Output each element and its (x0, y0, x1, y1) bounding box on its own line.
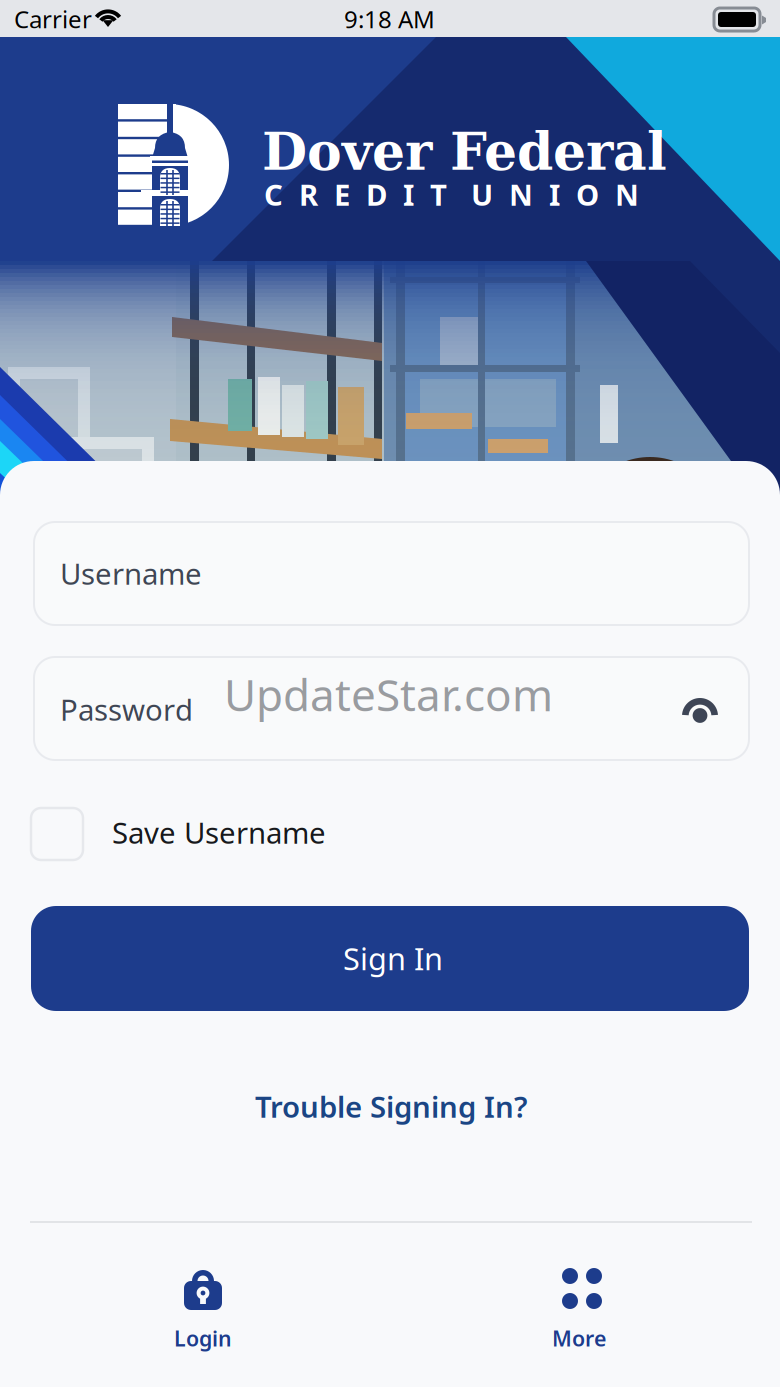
button[interactable]: More (448, 1248, 708, 1358)
button[interactable]: Password (34, 657, 749, 760)
button[interactable]: Username (34, 522, 749, 625)
button[interactable]: Login (72, 1248, 332, 1358)
staticText: Trouble Signing In? (255, 1087, 528, 1126)
button[interactable]: Sign In (31, 906, 749, 1011)
staticText: Carrier (14, 3, 92, 35)
staticText: Username (60, 554, 202, 593)
staticText: C R E D I T U N I O N (264, 175, 639, 214)
staticText: 9:18 AM (344, 3, 435, 35)
staticText: Password (60, 690, 193, 729)
staticText: Dover Federal (262, 121, 667, 182)
staticText: Sign In (343, 938, 443, 979)
button[interactable]: Save Username (31, 808, 331, 862)
staticText: Login (174, 1324, 232, 1352)
staticText: UpdateStar.com (224, 665, 553, 723)
staticText: More (552, 1324, 606, 1352)
staticText: Save Username (112, 813, 326, 852)
button[interactable]: Trouble Signing In? (225, 1080, 555, 1136)
